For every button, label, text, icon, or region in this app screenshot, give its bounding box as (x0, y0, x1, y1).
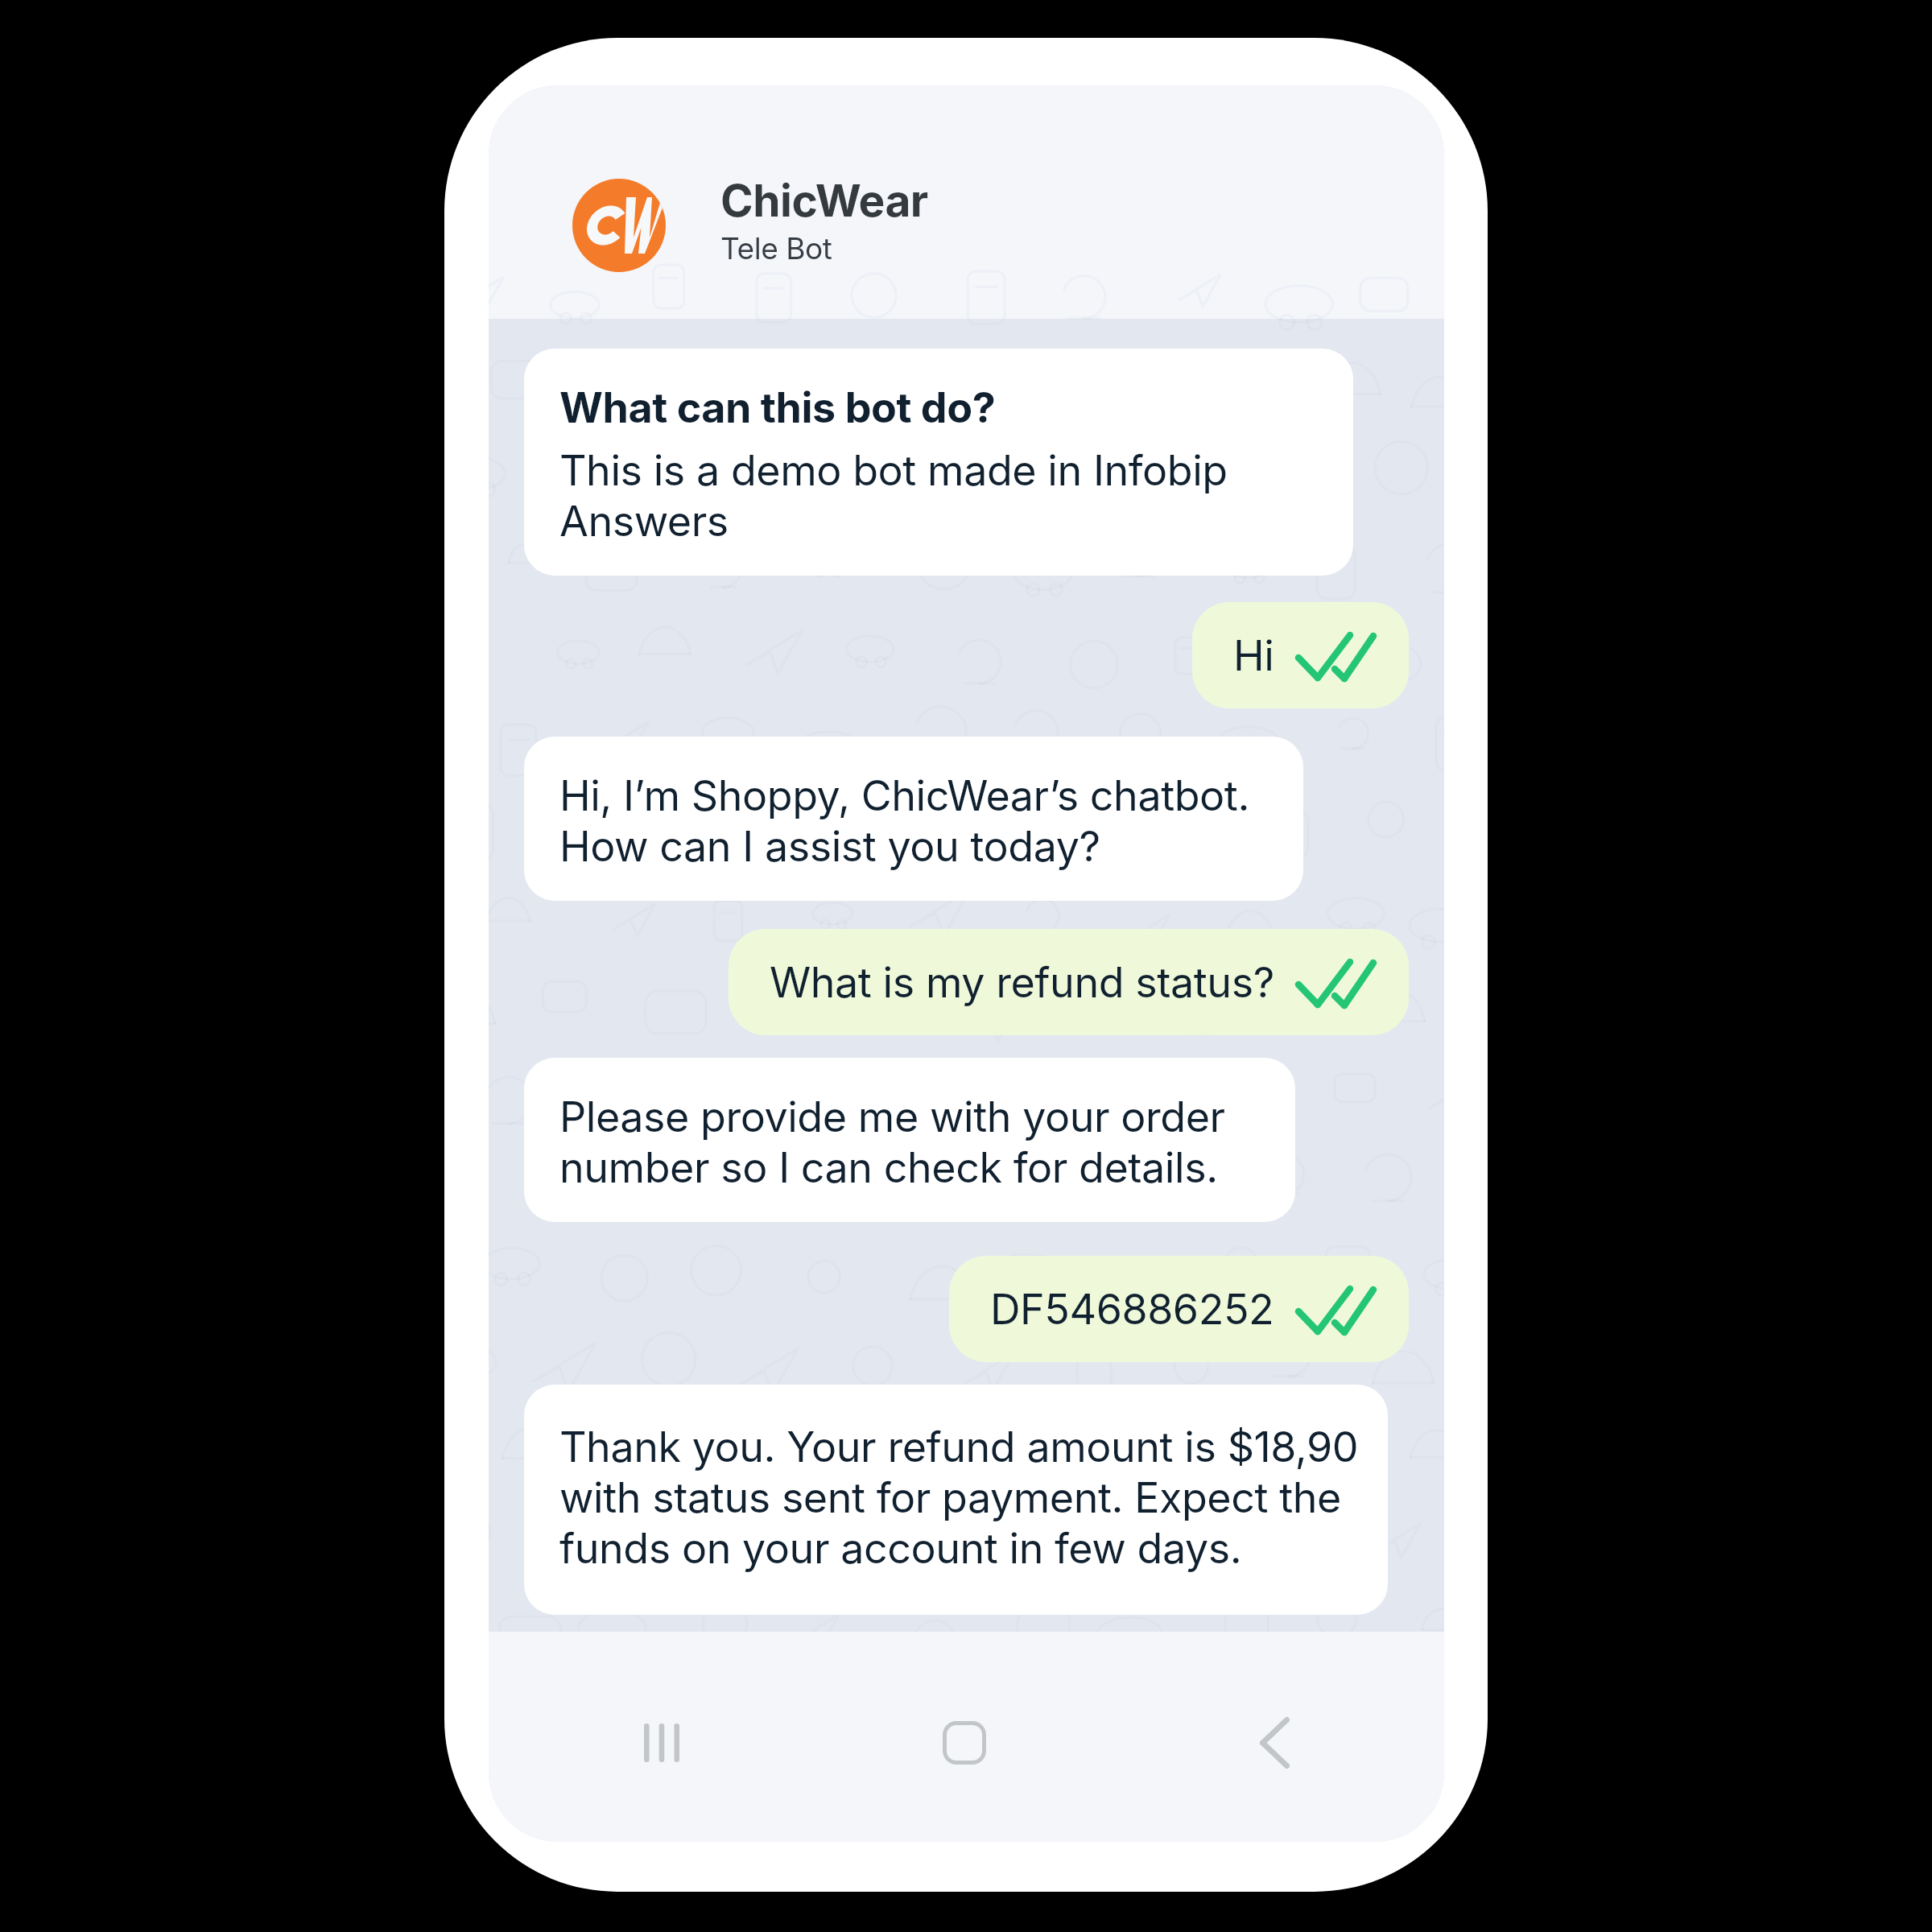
button[interactable]: Back (1198, 1666, 1351, 1819)
staticText: What can this bot do? (559, 382, 996, 433)
button[interactable]: Thank you. Your refund amount is $18,90 … (524, 1385, 1388, 1615)
staticText: What is my refund status? (770, 957, 1274, 1008)
button[interactable]: What is my refund status? (729, 929, 1409, 1035)
staticText: This is a demo bot made in Infobip Answe… (559, 445, 1228, 547)
staticText: Tele Bot (720, 229, 832, 267)
button[interactable]: Home (888, 1666, 1041, 1819)
staticText: DF546886252 (990, 1284, 1274, 1335)
staticText: Please provide me with your order number… (559, 1092, 1225, 1193)
button[interactable]: Hi (1192, 602, 1409, 708)
button[interactable]: ChicWear (489, 85, 1444, 319)
button[interactable]: Please provide me with your order number… (524, 1058, 1295, 1222)
staticText: Hi, I’m Shoppy, ChicWear’s chatbot. How … (559, 770, 1249, 872)
button[interactable]: Hi, I’m Shoppy, ChicWear’s chatbot. How … (524, 737, 1303, 901)
button[interactable]: DF546886252 (949, 1256, 1409, 1362)
staticText: Thank you. Your refund amount is $18,90 … (559, 1422, 1359, 1574)
button[interactable]: Recent apps (585, 1666, 738, 1819)
staticText: Hi (1233, 630, 1274, 681)
button[interactable]: What can this bot do? (524, 349, 1353, 576)
staticText: ChicWear (720, 174, 928, 227)
